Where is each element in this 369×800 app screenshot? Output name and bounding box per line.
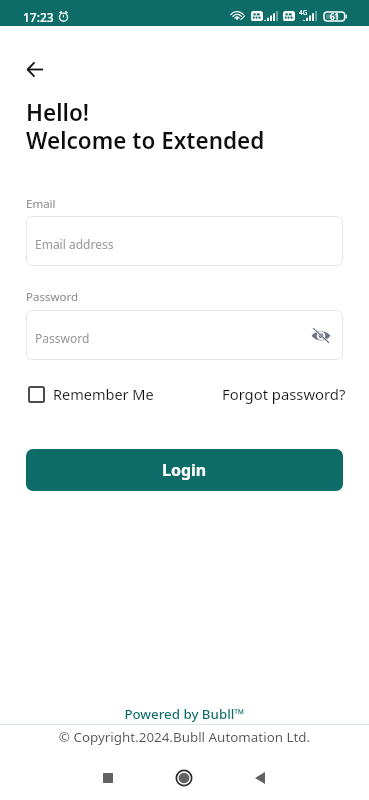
staticText: Email bbox=[26, 196, 56, 212]
button[interactable]: Remember Me bbox=[28, 384, 154, 404]
staticText: 4G bbox=[299, 8, 308, 17]
staticText: Email address bbox=[35, 236, 114, 252]
button[interactable]: Home bbox=[162, 756, 206, 800]
button[interactable]: Back bbox=[13, 47, 57, 91]
staticText: Remember Me bbox=[53, 384, 154, 404]
staticText: Password bbox=[26, 289, 79, 305]
staticText: Powered by Bubll™ bbox=[0, 705, 369, 723]
button[interactable]: Back bbox=[238, 756, 282, 800]
button[interactable]: Recent apps bbox=[86, 756, 130, 800]
staticText: Forgot password? bbox=[222, 384, 346, 404]
staticText: 17:23 bbox=[23, 9, 54, 25]
button[interactable]: Email address bbox=[26, 216, 343, 266]
staticText: © Copyright.2024.Bubll Automation Ltd. bbox=[0, 728, 369, 746]
button[interactable]: Forgot password? bbox=[222, 384, 346, 404]
staticText: 61 bbox=[330, 11, 340, 22]
staticText: Password bbox=[35, 330, 90, 346]
button[interactable]: Password bbox=[26, 310, 343, 360]
button[interactable]: Login bbox=[26, 449, 343, 491]
staticText: Login bbox=[162, 459, 207, 481]
staticText: Hello! Welcome to Extended bbox=[26, 97, 265, 155]
button[interactable]: Show password bbox=[307, 321, 335, 349]
